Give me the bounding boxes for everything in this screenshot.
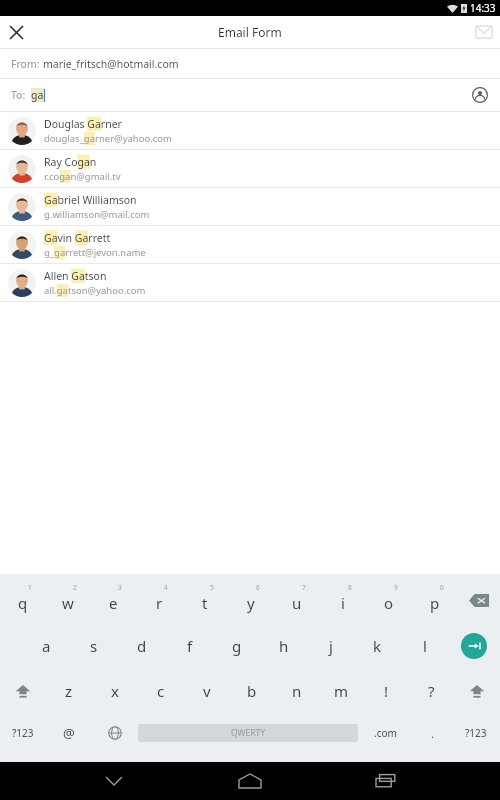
staticText: x (111, 681, 119, 701)
button[interactable]: @ (46, 713, 92, 753)
staticText: p (430, 593, 440, 613)
staticText: w (62, 593, 74, 613)
staticText: r (156, 593, 163, 613)
button[interactable]: Shift (454, 668, 500, 713)
button[interactable]: d (118, 623, 166, 668)
button[interactable]: 7 (274, 578, 320, 623)
staticText: From: (11, 57, 43, 71)
button[interactable]: Recent apps (364, 762, 408, 800)
button[interactable]: h (260, 623, 307, 668)
staticText: d (137, 636, 147, 656)
staticText: r.cogan@gmail.tv (44, 170, 121, 183)
button[interactable]: 5 (182, 578, 228, 623)
staticText: all.gatson@yahoo.com (44, 284, 146, 297)
button[interactable]: Hide keyboard (92, 762, 136, 800)
staticText: ?123 (465, 726, 487, 740)
staticText: c (157, 681, 165, 701)
button[interactable]: m (319, 668, 364, 713)
staticText: s (90, 636, 98, 656)
staticText: y (247, 593, 255, 613)
button[interactable]: 0 (412, 578, 458, 623)
staticText: 8 (348, 583, 352, 592)
staticText: Gabriel Williamson (44, 193, 137, 207)
staticText: 6 (256, 583, 260, 592)
button[interactable]: n (274, 668, 319, 713)
button[interactable]: ?123 (0, 713, 46, 753)
button[interactable]: 9 (366, 578, 412, 623)
staticText: o (384, 593, 394, 613)
staticText: ?123 (12, 726, 34, 740)
button[interactable]: Allen Gatson (0, 264, 500, 301)
button[interactable]: . (412, 713, 452, 753)
button[interactable]: Close (0, 16, 32, 48)
button[interactable]: 6 (228, 578, 274, 623)
button[interactable]: j (307, 623, 354, 668)
button[interactable]: Douglas Garner (0, 112, 500, 149)
button[interactable]: ?123 (452, 713, 500, 753)
staticText: To: (11, 88, 28, 102)
staticText: e (109, 593, 118, 613)
button[interactable]: ? (409, 668, 454, 713)
button[interactable]: 8 (320, 578, 366, 623)
staticText: g_garrett@jevon.name (44, 246, 146, 259)
staticText: . (431, 726, 434, 741)
button[interactable]: z (46, 668, 92, 713)
button[interactable]: 4 (136, 578, 182, 623)
button[interactable]: 1 (0, 578, 45, 623)
button[interactable]: Home (228, 762, 272, 800)
staticText: n (292, 681, 302, 701)
staticText: a (42, 636, 51, 656)
staticText: j (329, 636, 333, 656)
button[interactable]: Enter (448, 623, 500, 668)
staticText: z (65, 681, 73, 701)
button[interactable]: v (184, 668, 229, 713)
staticText: Ray Cogan (44, 155, 97, 169)
button[interactable]: From: (0, 49, 500, 78)
staticText: marie_fritsch@hotmail.com (43, 57, 179, 71)
staticText: Allen Gatson (44, 269, 107, 283)
button[interactable]: Gavin Garrett (0, 226, 500, 263)
button[interactable]: Choose contact (468, 83, 492, 107)
button[interactable]: Shift (0, 668, 46, 713)
staticText: h (279, 636, 289, 656)
staticText: douglas_garner@yahoo.com (44, 132, 172, 145)
staticText: q (18, 593, 28, 613)
button[interactable]: l (401, 623, 448, 668)
button[interactable]: Change language (92, 713, 138, 753)
staticText: m (334, 681, 349, 701)
button[interactable]: 3 (90, 578, 136, 623)
button[interactable]: ! (364, 668, 409, 713)
button[interactable]: Send (468, 16, 500, 48)
button[interactable]: Ray Cogan (0, 150, 500, 187)
button[interactable]: b (229, 668, 274, 713)
button[interactable]: k (354, 623, 401, 668)
staticText: @ (63, 724, 75, 742)
button[interactable]: 2 (45, 578, 90, 623)
staticText: Gavin Garrett (44, 231, 111, 245)
staticText: Email Form (218, 24, 282, 40)
button[interactable]: c (138, 668, 184, 713)
staticText: 14:33 (470, 1, 496, 15)
staticText: g (232, 636, 242, 656)
staticText: 1 (28, 583, 32, 592)
staticText: 0 (440, 583, 444, 592)
button[interactable]: .com (358, 713, 412, 753)
button[interactable]: Backspace (458, 578, 500, 623)
staticText: Douglas Garner (44, 117, 122, 131)
staticText: .com (374, 726, 397, 740)
staticText: QWERTY (231, 727, 266, 739)
button[interactable]: s (70, 623, 118, 668)
button[interactable]: a (22, 623, 70, 668)
button[interactable]: g (213, 623, 260, 668)
staticText: v (203, 681, 211, 701)
staticText: t (202, 593, 208, 613)
staticText: f (187, 636, 193, 656)
staticText: i (341, 593, 345, 613)
button[interactable]: Gabriel Williamson (0, 188, 500, 225)
staticText: ? (428, 681, 435, 701)
staticText: ! (384, 681, 389, 701)
button[interactable]: QWERTY (138, 724, 358, 742)
button[interactable]: x (92, 668, 138, 713)
button[interactable]: f (166, 623, 213, 668)
staticText: 5 (210, 583, 214, 592)
